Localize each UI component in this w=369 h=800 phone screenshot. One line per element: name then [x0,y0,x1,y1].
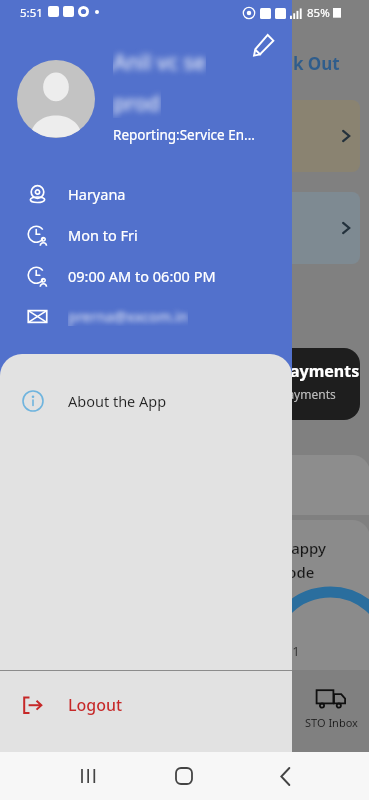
staticText: code [280,562,315,582]
button[interactable]: Home [157,752,211,800]
button[interactable]: Haryana [0,178,292,210]
button[interactable]: Logout [0,679,292,731]
staticText: Logout [68,694,123,716]
button[interactable]: Edit profile [246,28,280,62]
staticText: Mon to Fri [68,225,138,245]
button[interactable] [40,100,360,172]
staticText: payments [280,386,336,402]
button[interactable]: About the App [0,378,292,424]
button[interactable]: prerna@xxcom.in [0,300,292,332]
staticText: STO Inbox [305,715,358,730]
button[interactable]: Payments [180,348,360,420]
staticText: Haryana [68,184,126,204]
staticText: Check Out [252,52,340,75]
staticText: prerna@xxcom.in [68,306,188,326]
button[interactable]: STO Inbox [296,688,366,730]
staticText: Anil vc se [113,48,206,77]
button[interactable]: Mon to Fri [0,219,292,251]
staticText: 5:51 [20,5,43,21]
button[interactable]: 09:00 AM to 06:00 PM [0,260,292,292]
staticText: About the App [68,391,167,411]
button[interactable]: Back [258,752,312,800]
staticText: Happy [280,538,327,558]
staticText: 0/1 [280,642,300,660]
button[interactable]: Recent apps [62,752,116,800]
staticText: 85% [307,5,330,21]
button[interactable] [40,192,360,264]
button[interactable]: Profile photo [17,60,95,138]
staticText: Reporting:Service En... [113,126,255,144]
staticText: prod [113,89,161,118]
staticText: Payments [280,360,360,382]
staticText: 09:00 AM to 06:00 PM [68,266,216,286]
